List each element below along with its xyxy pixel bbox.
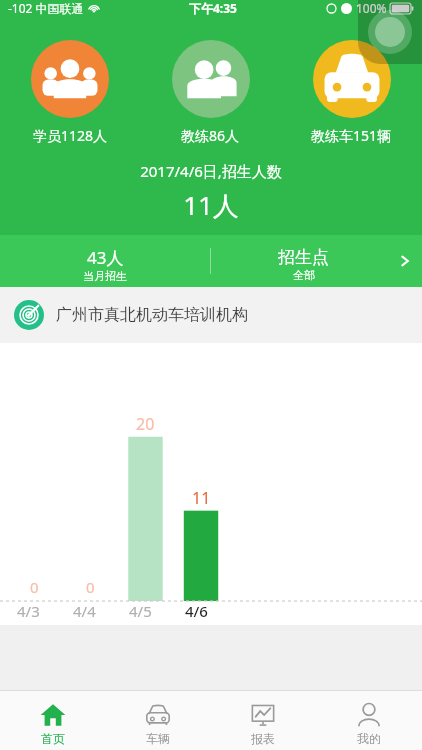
staticText: 下午4:35: [189, 0, 237, 16]
button[interactable]: 43人: [0, 239, 210, 283]
staticText: 0: [30, 577, 39, 597]
staticText: 教练车151辆: [311, 126, 392, 145]
staticText: 学员1128人: [33, 126, 108, 145]
staticText: 4/4: [73, 601, 96, 621]
button[interactable]: 招生点: [211, 240, 422, 282]
staticText: 教练86人: [181, 126, 240, 145]
staticText: 43人: [87, 246, 124, 269]
staticText: 11人: [0, 187, 422, 223]
staticText: 车辆: [146, 731, 170, 746]
staticText: 广州市真北机动车培训机构: [56, 305, 248, 325]
button[interactable]: 我的: [316, 695, 422, 746]
button[interactable]: 报表: [210, 695, 316, 746]
staticText: 报表: [251, 731, 275, 746]
staticText: 招生点: [278, 247, 329, 268]
staticText: 100%: [356, 0, 387, 16]
button[interactable]: 广州市真北机动车培训机构: [0, 287, 422, 343]
staticText: 全部: [293, 268, 315, 282]
button[interactable]: 首页: [0, 695, 105, 746]
button[interactable]: 学员1128人: [0, 38, 140, 147]
staticText: 20: [136, 413, 155, 435]
button[interactable]: 教练车151辆: [281, 38, 422, 147]
staticText: 4/3: [17, 601, 40, 621]
button[interactable]: 教练86人: [140, 38, 281, 147]
staticText: 4/6: [185, 601, 208, 621]
staticText: 2017/4/6日,招生人数: [0, 161, 422, 181]
staticText: 我的: [357, 731, 381, 746]
staticText: 4/5: [129, 601, 152, 621]
staticText: 首页: [41, 731, 65, 746]
other: More: [396, 251, 414, 271]
staticText: 当月招生: [83, 269, 127, 283]
button[interactable]: 车辆: [105, 695, 210, 746]
staticText: 11: [192, 487, 211, 509]
staticText: 0: [86, 577, 95, 597]
staticText: -102 中国联通: [8, 0, 84, 16]
